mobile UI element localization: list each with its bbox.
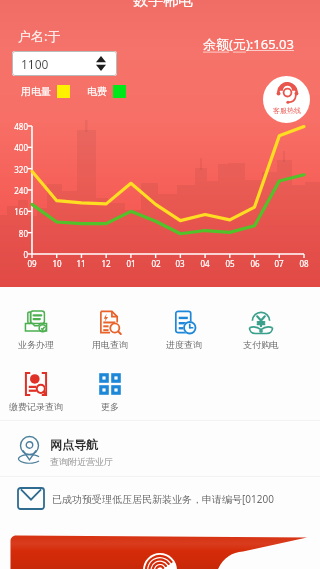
button[interactable]: 1100	[12, 51, 117, 76]
staticText: 网点导航	[50, 437, 98, 452]
button[interactable]: 缴费记录查询	[0, 365, 73, 417]
staticText: 320	[2, 164, 28, 175]
staticText: 05	[221, 258, 239, 269]
staticText: 用电查询	[92, 339, 128, 350]
staticText: 12	[97, 258, 115, 269]
button[interactable]: 支付购电	[224, 303, 298, 355]
staticText: 进度查询	[166, 339, 202, 350]
staticText: 查询附近营业厅	[50, 456, 113, 467]
staticText: 11	[72, 258, 90, 269]
staticText: 07	[270, 258, 288, 269]
staticText: 电费	[87, 85, 107, 98]
staticText: 10	[48, 258, 66, 269]
staticText: 240	[2, 185, 28, 196]
button[interactable]: 网点导航	[0, 427, 320, 473]
staticText: 02	[147, 258, 165, 269]
staticText: 04	[196, 258, 214, 269]
button[interactable]: 进度查询	[147, 303, 221, 355]
button[interactable]: 已成功预受理低压居民新装业务，申请编号[01200	[0, 481, 320, 519]
button[interactable]: 客服热线	[263, 76, 310, 123]
button[interactable]: 更多	[73, 365, 147, 417]
staticText: 01	[122, 258, 140, 269]
staticText: 支付购电	[243, 339, 279, 350]
staticText: 480	[2, 121, 28, 132]
staticText: 160	[2, 206, 28, 217]
staticText: 06	[246, 258, 264, 269]
button[interactable]: 余额(元):165.03	[203, 35, 294, 53]
staticText: 户名:于	[18, 27, 61, 45]
staticText: 03	[171, 258, 189, 269]
staticText: 缴费记录查询	[9, 401, 63, 412]
button[interactable]: 业务办理	[0, 303, 73, 355]
staticText: 1100	[21, 56, 49, 72]
button[interactable]: 用电查询	[73, 303, 147, 355]
staticText: 400	[2, 142, 28, 153]
staticText: 80	[2, 228, 28, 239]
staticText: 客服热线	[273, 106, 301, 115]
staticText: 0	[2, 249, 28, 260]
staticText: 更多	[101, 401, 119, 412]
staticText: 09	[23, 258, 41, 269]
staticText: 数字郴电	[133, 0, 193, 10]
staticText: 已成功预受理低压居民新装业务，申请编号[01200	[52, 492, 274, 506]
staticText: 业务办理	[18, 339, 54, 350]
staticText: 用电量	[21, 85, 51, 98]
staticText: 08	[295, 258, 313, 269]
